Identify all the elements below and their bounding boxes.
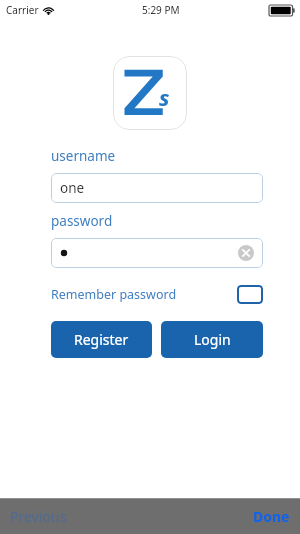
button[interactable]: Remember password [51, 283, 263, 305]
button[interactable]: Done [253, 503, 290, 530]
staticText: 5:29 PM [142, 3, 180, 17]
staticText: Login [194, 330, 231, 349]
staticText: Register [74, 330, 129, 349]
button[interactable]: Clear text [238, 245, 254, 261]
staticText: Remember password [51, 286, 177, 303]
button[interactable]: one [51, 173, 263, 203]
button[interactable]: Register [51, 321, 152, 358]
staticText: Previous [10, 507, 67, 526]
staticText: one [60, 179, 85, 197]
button[interactable]: Previous [10, 503, 67, 530]
other: App logo [113, 56, 187, 130]
staticText: password [51, 212, 113, 230]
staticText: s [159, 82, 170, 112]
button[interactable]: Login [161, 321, 263, 358]
staticText: Done [253, 507, 290, 526]
staticText: username [51, 147, 116, 165]
button[interactable]: Clear text [51, 238, 263, 268]
staticText: Carrier [6, 3, 39, 17]
